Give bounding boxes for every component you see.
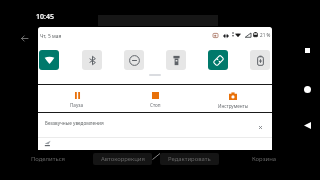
staticText: Поделиться <box>31 155 65 163</box>
staticText: Автокоррекция <box>101 155 145 163</box>
button[interactable]: Back <box>304 122 311 129</box>
staticText: Стоп <box>150 102 161 108</box>
button[interactable]: Home <box>304 86 311 93</box>
staticText: Беззвучные уведомления <box>45 120 104 126</box>
staticText: Пауза <box>70 102 84 108</box>
staticText: Инструменты <box>218 103 249 109</box>
staticText: Чт, 5 мая <box>40 33 62 40</box>
button[interactable]: Корзина <box>240 153 288 165</box>
staticText: 10:45 <box>36 12 54 22</box>
button[interactable]: Back <box>16 30 32 46</box>
button[interactable]: Quick setting <box>166 50 186 70</box>
button[interactable]: Поделиться <box>24 153 72 165</box>
button[interactable]: Quick setting <box>82 50 102 70</box>
button[interactable]: Автокоррекция <box>93 153 152 165</box>
button[interactable]: Dismiss notifications <box>255 122 265 132</box>
staticText: 21 % <box>260 32 271 38</box>
button[interactable]: Quick setting <box>250 50 270 70</box>
button[interactable]: Quick setting <box>39 50 59 70</box>
button[interactable]: Пауза <box>49 85 105 112</box>
staticText: Корзина <box>252 155 277 163</box>
button[interactable]: Стоп <box>127 85 183 112</box>
button[interactable]: Редактировать <box>160 153 219 165</box>
staticText: Редактировать <box>168 155 211 163</box>
button[interactable]: Quick setting <box>208 50 228 70</box>
button[interactable]: Инструменты <box>205 85 261 112</box>
button[interactable]: Quick setting <box>124 50 144 70</box>
